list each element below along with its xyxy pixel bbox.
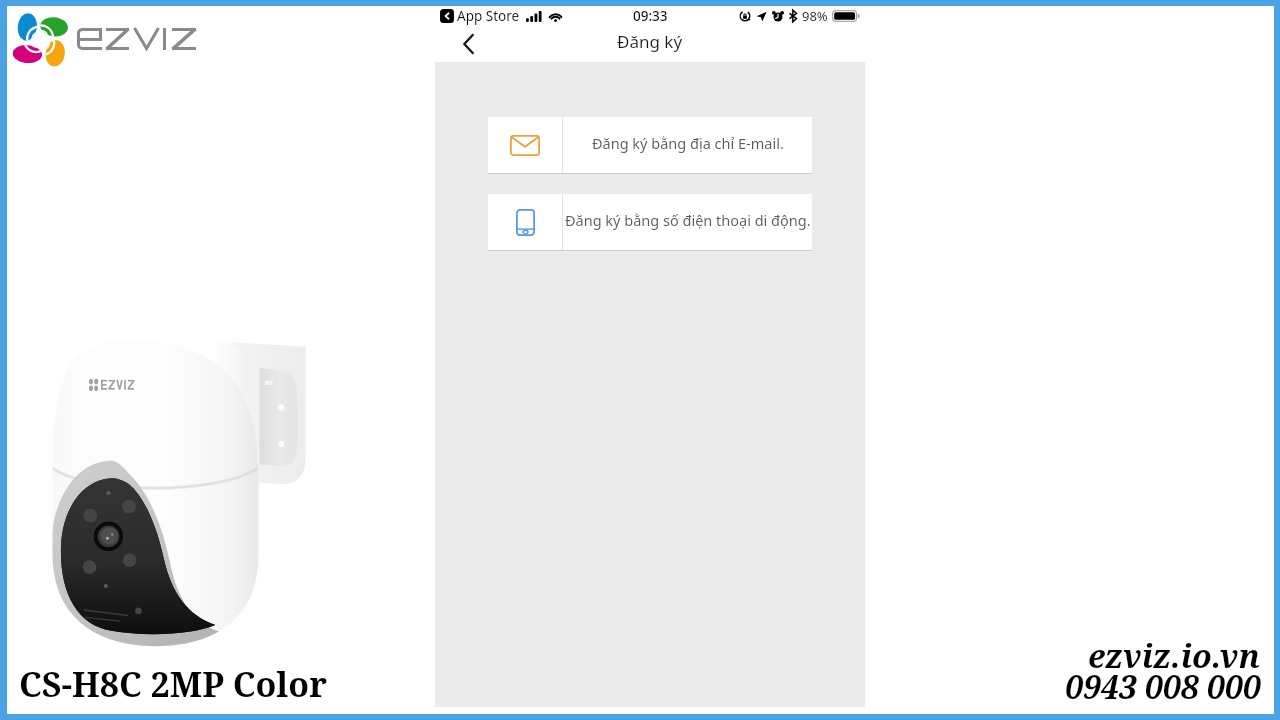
staticText: Đăng ký bằng số điện thoại di động. xyxy=(565,210,811,230)
staticText: App Store xyxy=(457,7,520,25)
button[interactable]: Đăng ký bằng địa chỉ E-mail. xyxy=(488,117,812,173)
staticText: Đăng ký bằng địa chỉ E-mail. xyxy=(592,133,784,153)
staticText: 0943 008 000 xyxy=(1065,665,1261,709)
staticText: Đăng ký xyxy=(617,30,683,53)
staticText: 98% xyxy=(802,7,828,25)
button[interactable]: Back xyxy=(453,29,483,59)
button[interactable]: Đăng ký bằng số điện thoại di động. xyxy=(488,194,812,250)
staticText: 09:33 xyxy=(633,7,668,25)
staticText: ezviz.io.vn xyxy=(1088,634,1261,678)
staticText: CS-H8C 2MP Color xyxy=(19,661,327,707)
